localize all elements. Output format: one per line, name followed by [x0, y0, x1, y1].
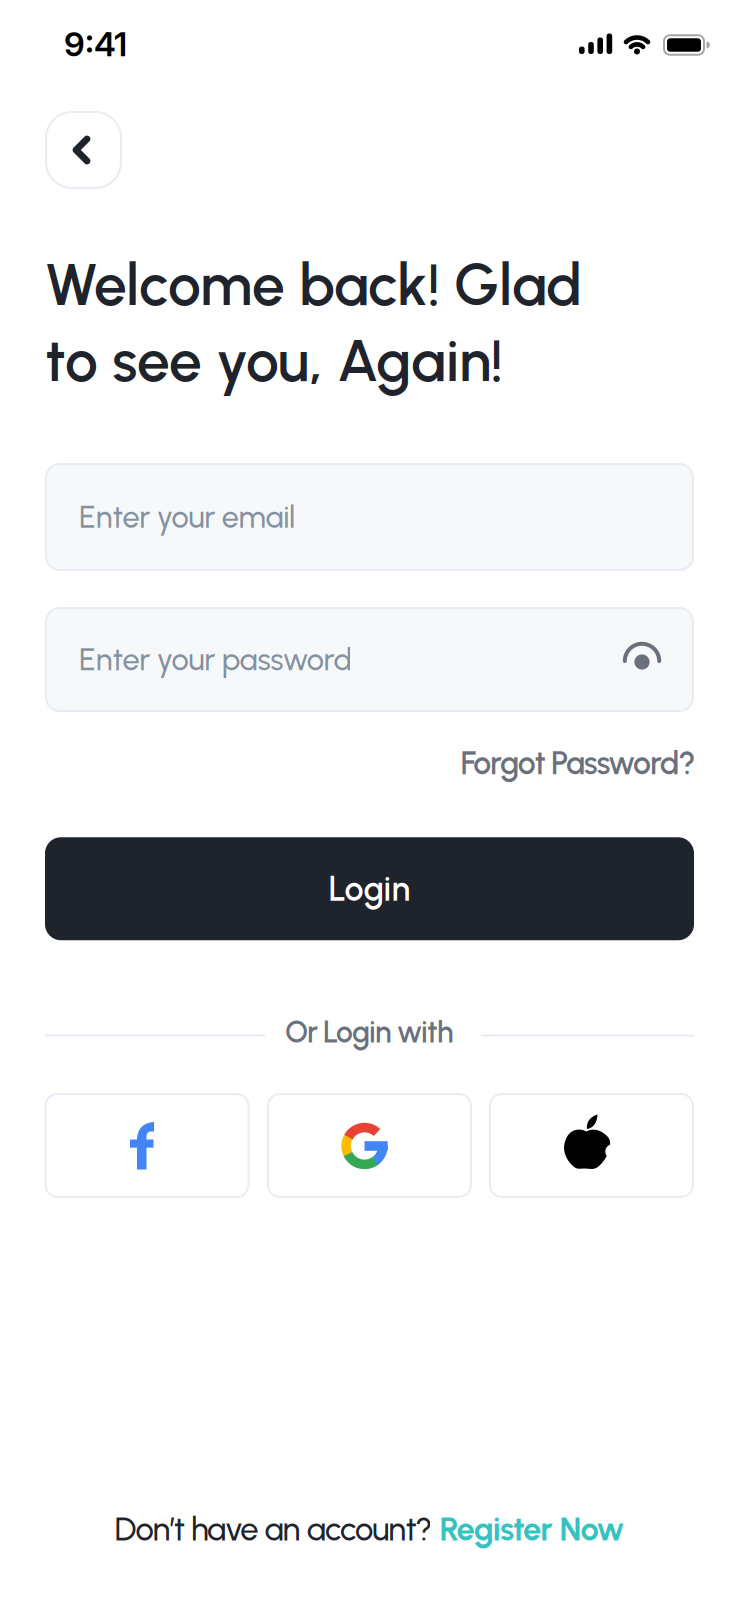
staticText: Or Login with: [285, 1014, 454, 1050]
button[interactable]: Back: [45, 111, 122, 189]
staticText: Don’t have an account?: [114, 1509, 432, 1549]
staticText: 9:41: [64, 24, 127, 64]
staticText: Login: [328, 868, 410, 909]
staticText: Forgot Password?: [460, 744, 695, 782]
button[interactable]: Login: [45, 837, 694, 940]
button[interactable]: Register Now: [439, 1509, 625, 1549]
staticText: Welcome back! Glad: [45, 249, 582, 320]
staticText: Enter your password: [79, 641, 352, 678]
button[interactable]: Show password: [614, 632, 670, 688]
button[interactable]: Login with Google: [267, 1093, 472, 1198]
button[interactable]: Login with Facebook: [44, 1093, 249, 1198]
button[interactable]: Forgot Password?: [460, 744, 695, 782]
staticText: Register Now: [439, 1509, 625, 1549]
button[interactable]: Login with Apple: [489, 1093, 694, 1198]
staticText: to see you, Again!: [45, 325, 503, 396]
staticText: Enter your email: [79, 499, 295, 535]
